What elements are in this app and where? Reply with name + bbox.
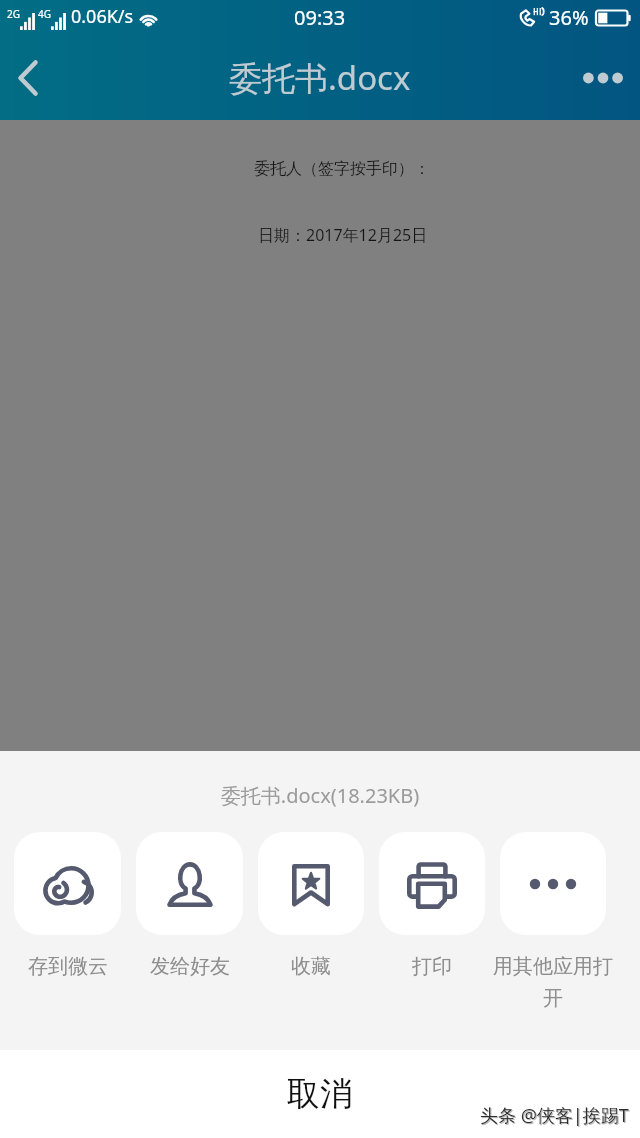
staticText: 取消 xyxy=(287,1073,353,1115)
staticText: 头条 @侠客|挨踢T xyxy=(481,1104,630,1129)
staticText: 发给好友 xyxy=(150,954,230,979)
staticText: 日期：2017年12月25日 xyxy=(258,224,428,246)
button[interactable]: 存到微云 xyxy=(14,832,121,979)
staticText: 2G xyxy=(7,7,20,21)
staticText: 0.06K/s xyxy=(71,4,134,29)
staticText: 打印 xyxy=(412,954,452,979)
staticText: 委托人（签字按手印）： xyxy=(254,159,430,179)
staticText: 委托书.docx(18.23KB) xyxy=(0,782,640,809)
staticText: 收藏 xyxy=(291,954,331,979)
button[interactable]: 用其他应用打开 xyxy=(500,832,606,1011)
button[interactable]: 取消 xyxy=(0,1050,640,1138)
button[interactable]: 打印 xyxy=(379,832,485,979)
staticText: 存到微云 xyxy=(28,954,108,979)
staticText: 用其他应用打开 xyxy=(491,954,615,1011)
button[interactable]: 发给好友 xyxy=(136,832,243,979)
staticText: 09:33 xyxy=(294,4,346,31)
staticText: 委托书.docx xyxy=(229,55,411,100)
staticText: 4G xyxy=(38,7,51,21)
staticText: 36% xyxy=(549,4,589,31)
staticText: 头条 @侠客|挨踢T xyxy=(480,1103,629,1128)
button[interactable]: Back xyxy=(0,36,56,120)
button[interactable]: 收藏 xyxy=(258,832,364,979)
button[interactable]: More options xyxy=(566,36,640,120)
